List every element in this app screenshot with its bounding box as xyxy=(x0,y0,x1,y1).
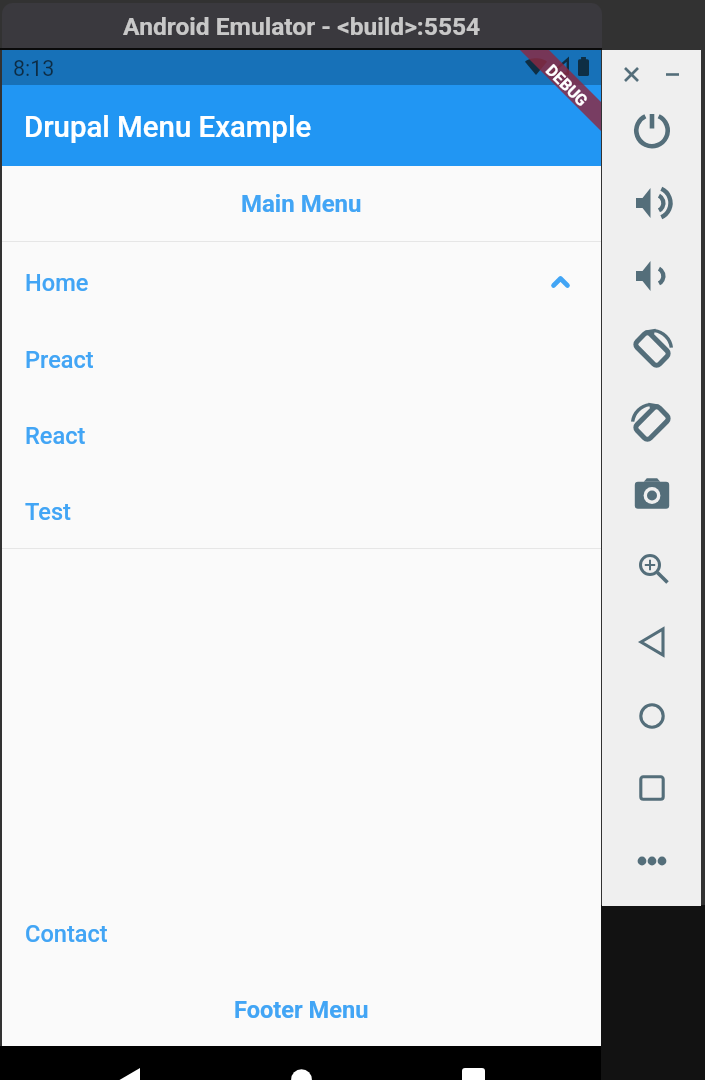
button[interactable]: Minimize xyxy=(651,53,693,95)
staticText: Test xyxy=(25,498,71,526)
button[interactable]: Take screenshot xyxy=(602,464,701,524)
staticText: Home xyxy=(25,269,89,297)
button[interactable]: Rotate right xyxy=(602,319,701,379)
button[interactable]: Preact xyxy=(2,320,601,396)
button[interactable]: Footer Menu xyxy=(2,970,601,1046)
button[interactable]: Rotate left xyxy=(602,393,701,453)
button[interactable]: Back xyxy=(93,1068,163,1080)
staticText: Preact xyxy=(25,346,94,374)
button[interactable]: Volume up xyxy=(602,173,701,233)
button[interactable]: Home xyxy=(2,242,601,320)
staticText: 8:13 xyxy=(13,56,55,81)
button[interactable]: Test xyxy=(2,472,601,548)
button[interactable]: Contact xyxy=(2,894,601,970)
staticText: Footer Menu xyxy=(234,996,369,1024)
button[interactable]: Overview xyxy=(602,758,701,818)
button[interactable]: Close xyxy=(610,53,652,95)
button[interactable]: Volume down xyxy=(602,246,701,306)
button[interactable]: React xyxy=(2,396,601,472)
staticText: DEBUG xyxy=(541,60,592,110)
button[interactable]: Back xyxy=(602,612,701,672)
button[interactable]: Zoom xyxy=(602,539,701,599)
staticText: Android Emulator - <build>:5554 xyxy=(123,12,481,41)
staticText: Contact xyxy=(25,920,108,948)
staticText: Main Menu xyxy=(241,190,362,218)
button[interactable]: More xyxy=(602,831,701,891)
button[interactable]: Main Menu xyxy=(2,166,601,241)
button[interactable]: Home xyxy=(266,1069,336,1080)
staticText: Drupal Menu Example xyxy=(24,110,312,144)
button[interactable]: Home xyxy=(602,686,701,746)
staticText: React xyxy=(25,422,86,450)
button[interactable]: Recents xyxy=(438,1068,508,1080)
button[interactable]: Power xyxy=(602,99,701,159)
